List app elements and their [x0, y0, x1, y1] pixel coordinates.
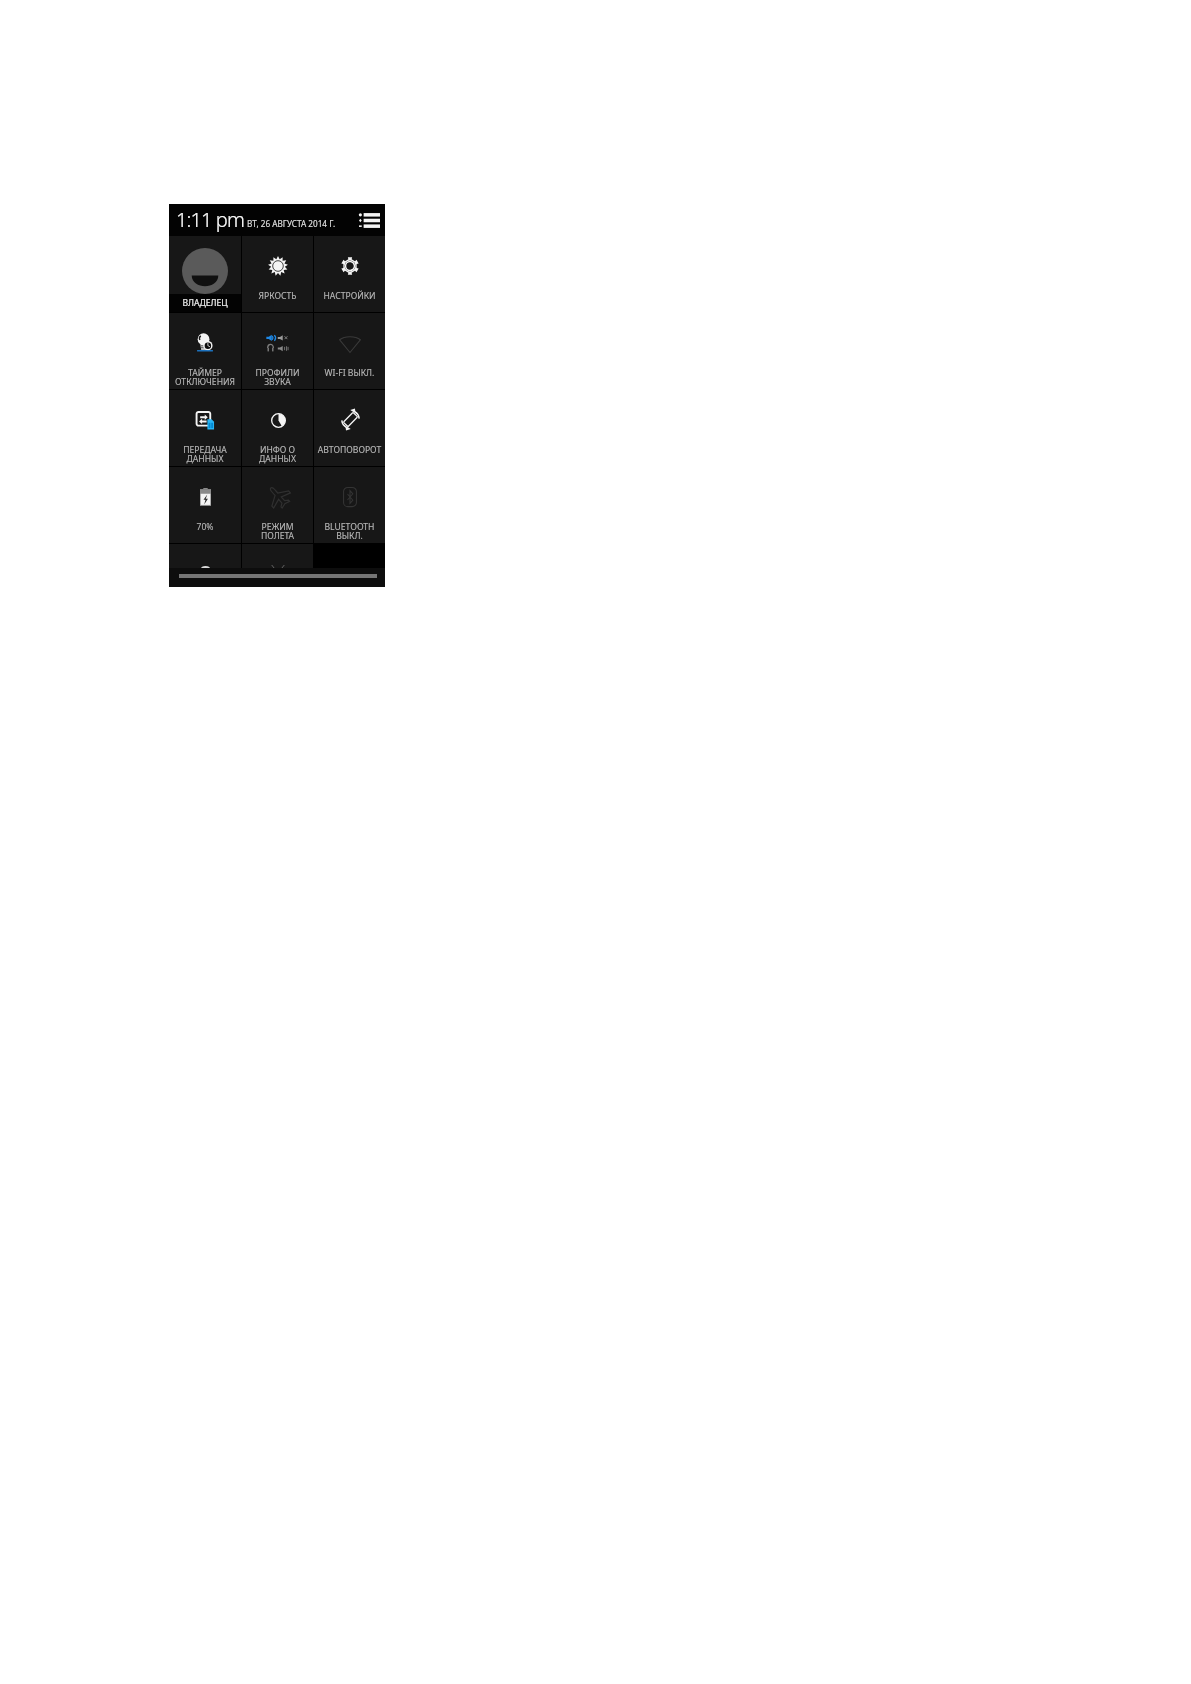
button[interactable]: 70%	[169, 467, 241, 543]
button[interactable]: ИНФО О ДАННЫХ	[242, 390, 313, 466]
button[interactable]: Sync	[242, 544, 313, 568]
staticText: ТАЙМЕР ОТКЛЮЧЕНИЯ	[169, 367, 241, 388]
button[interactable]: ЯРКОСТЬ	[242, 236, 313, 312]
staticText: WI-FI ВЫКЛ.	[314, 367, 385, 379]
button[interactable]: АВТОПОВОРОТ	[314, 390, 385, 466]
button[interactable]: НАСТРОЙКИ	[314, 236, 385, 312]
staticText: ВТ, 26 АВГУСТА 2014 Г.	[247, 218, 336, 229]
staticText: НАСТРОЙКИ	[314, 290, 385, 302]
staticText: ПРОФИЛИ ЗВУКА	[242, 367, 313, 388]
button[interactable]: Location	[169, 544, 241, 568]
button[interactable]: Drag handle	[169, 568, 385, 587]
staticText: ИНФО О ДАННЫХ	[242, 444, 313, 465]
button[interactable]: ПРОФИЛИ ЗВУКА	[242, 313, 313, 389]
staticText: 1:11 pm	[176, 206, 244, 233]
staticText: АВТОПОВОРОТ	[314, 444, 385, 456]
button[interactable]: ВЛАДЕЛЕЦ	[169, 236, 241, 312]
staticText: 70%	[169, 521, 241, 533]
button[interactable]: Notifications list	[359, 211, 380, 229]
staticText: BLUETOOTH ВЫКЛ.	[314, 521, 385, 542]
staticText: ЯРКОСТЬ	[242, 290, 313, 302]
staticText: РЕЖИМ ПОЛЕТА	[242, 521, 313, 542]
button[interactable]: ТАЙМЕР ОТКЛЮЧЕНИЯ	[169, 313, 241, 389]
button[interactable]: ПЕРЕДАЧА ДАННЫХ	[169, 390, 241, 466]
staticText: ВЛАДЕЛЕЦ	[182, 297, 228, 309]
button[interactable]: WI-FI ВЫКЛ.	[314, 313, 385, 389]
staticText: ПЕРЕДАЧА ДАННЫХ	[169, 444, 241, 465]
button[interactable]: BLUETOOTH ВЫКЛ.	[314, 467, 385, 543]
button[interactable]: РЕЖИМ ПОЛЕТА	[242, 467, 313, 543]
